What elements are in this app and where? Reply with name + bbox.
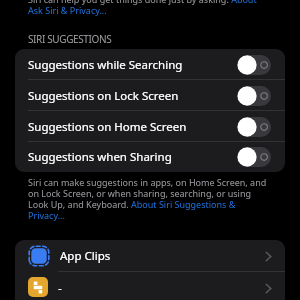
staticText: Suggestions while Searching xyxy=(28,57,183,73)
button[interactable]: Suggestions on Home Screen xyxy=(15,111,285,142)
button[interactable]: Suggestions on Lock Screen xyxy=(15,80,285,111)
button[interactable]: - xyxy=(15,272,285,300)
button[interactable]: Toggle setting xyxy=(237,86,271,106)
staticText: Suggestions when Sharing xyxy=(28,149,172,165)
button[interactable]: Toggle setting xyxy=(237,147,271,167)
staticText: Siri can help you get things done just b… xyxy=(28,0,272,16)
button[interactable]: Toggle setting xyxy=(237,117,271,137)
button[interactable]: Suggestions while Searching xyxy=(15,49,285,80)
button[interactable]: App Clips xyxy=(15,240,285,272)
staticText: SIRI SUGGESTIONS xyxy=(28,32,112,46)
staticText: Suggestions on Home Screen xyxy=(28,119,187,135)
staticText: Suggestions on Lock Screen xyxy=(28,88,179,104)
staticText: - xyxy=(58,280,62,296)
button[interactable]: Toggle setting xyxy=(237,55,271,75)
staticText: App Clips xyxy=(60,248,111,264)
staticText: Siri can make suggestions in apps, on Ho… xyxy=(28,176,272,222)
button[interactable]: Suggestions when Sharing xyxy=(15,142,285,172)
